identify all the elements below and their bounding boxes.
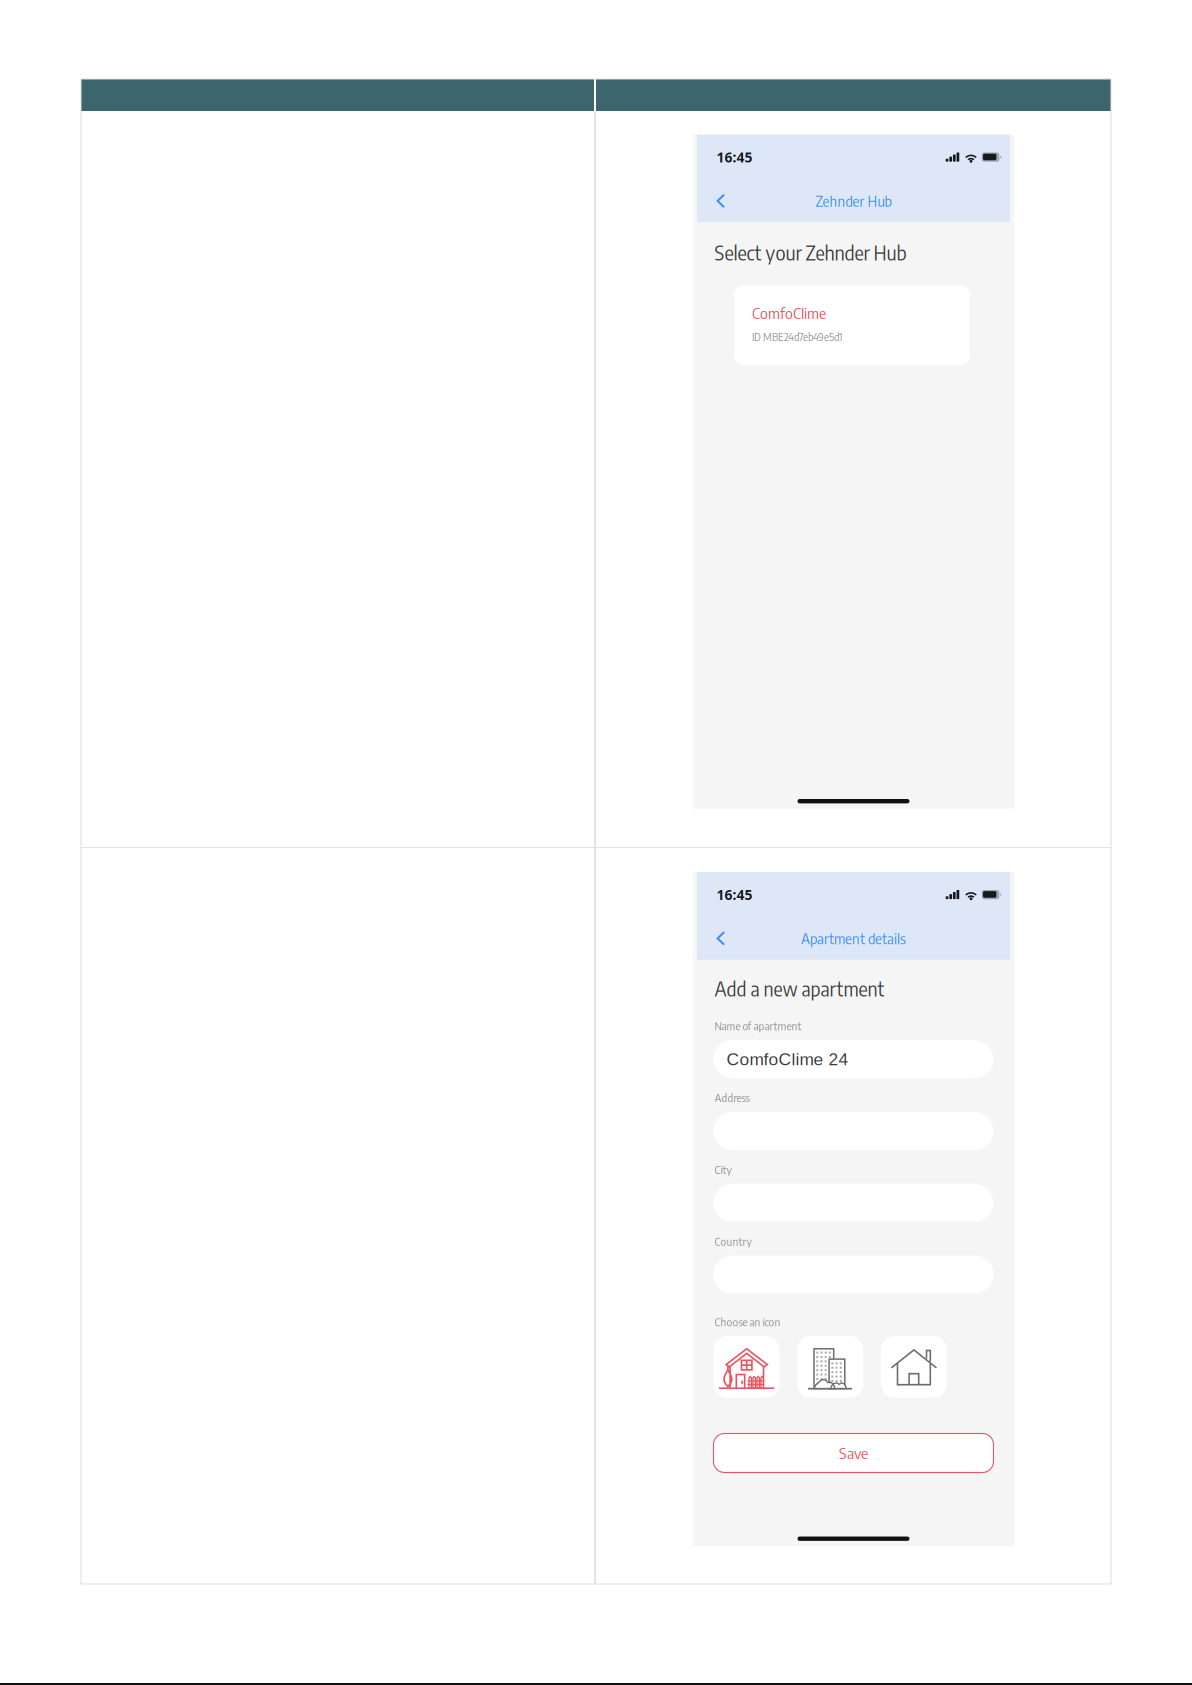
staticText: Address bbox=[714, 1091, 749, 1104]
button[interactable]: Back bbox=[715, 186, 741, 216]
staticText: 16:45 bbox=[716, 148, 752, 167]
staticText: City bbox=[714, 1163, 731, 1176]
button[interactable]: Save bbox=[713, 1433, 993, 1472]
staticText: ComfoClime 24 bbox=[726, 1049, 848, 1069]
staticText: Country bbox=[714, 1235, 751, 1248]
button[interactable]: Back bbox=[715, 923, 741, 953]
staticText: ComfoClime bbox=[752, 304, 826, 322]
staticText: ID MBE24d7eb49e5d1 bbox=[752, 330, 842, 343]
staticText: 16:45 bbox=[716, 885, 752, 904]
button[interactable]: ComfoClime bbox=[734, 286, 970, 365]
button[interactable]: House bbox=[881, 1336, 947, 1398]
staticText: Select your Zehnder Hub bbox=[714, 240, 906, 265]
button[interactable]: Hydronic house bbox=[713, 1336, 779, 1398]
staticText: Choose an icon bbox=[714, 1315, 780, 1329]
staticText: Name of apartment bbox=[714, 1019, 801, 1033]
staticText: Apartment details bbox=[801, 929, 906, 947]
staticText: Save bbox=[839, 1444, 868, 1462]
button[interactable]: Apartment block bbox=[797, 1336, 863, 1398]
staticText: Zehnder Hub bbox=[815, 192, 891, 210]
staticText: Add a new apartment bbox=[714, 977, 884, 1001]
button[interactable]: ComfoClime 24 bbox=[713, 1040, 993, 1078]
